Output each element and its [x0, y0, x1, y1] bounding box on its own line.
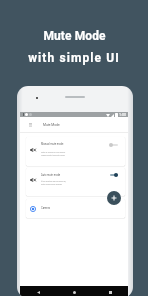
staticText: mute mode will be enabled. — [41, 183, 63, 185]
staticText: 1:00 — [119, 113, 126, 117]
staticText: with simple UI — [28, 51, 120, 65]
button[interactable]: Manual mute mode — [26, 137, 125, 166]
staticText: Mute Mode — [43, 29, 106, 43]
staticText: Manual mute mode — [41, 143, 64, 146]
button[interactable]: Camera — [26, 199, 125, 218]
button[interactable]: Switch off — [109, 142, 118, 148]
staticText: Auto mute mode — [41, 174, 61, 177]
staticText: Camera — [41, 207, 50, 210]
staticText: Mute Mode — [43, 123, 60, 127]
button[interactable]: Auto mute mode — [26, 168, 125, 196]
button[interactable]: Back — [20, 286, 56, 296]
button[interactable]: Add — [107, 191, 121, 205]
button[interactable]: Open navigation menu — [26, 120, 35, 129]
staticText: Higher priority than auto mode. — [41, 154, 66, 156]
button[interactable]: Switch on — [109, 172, 118, 178]
staticText: If the selected app has been run, — [41, 180, 67, 182]
button[interactable]: Home — [56, 286, 92, 296]
button[interactable]: Recents — [92, 286, 128, 296]
staticText: Mute all sounds on your device. — [41, 151, 66, 153]
